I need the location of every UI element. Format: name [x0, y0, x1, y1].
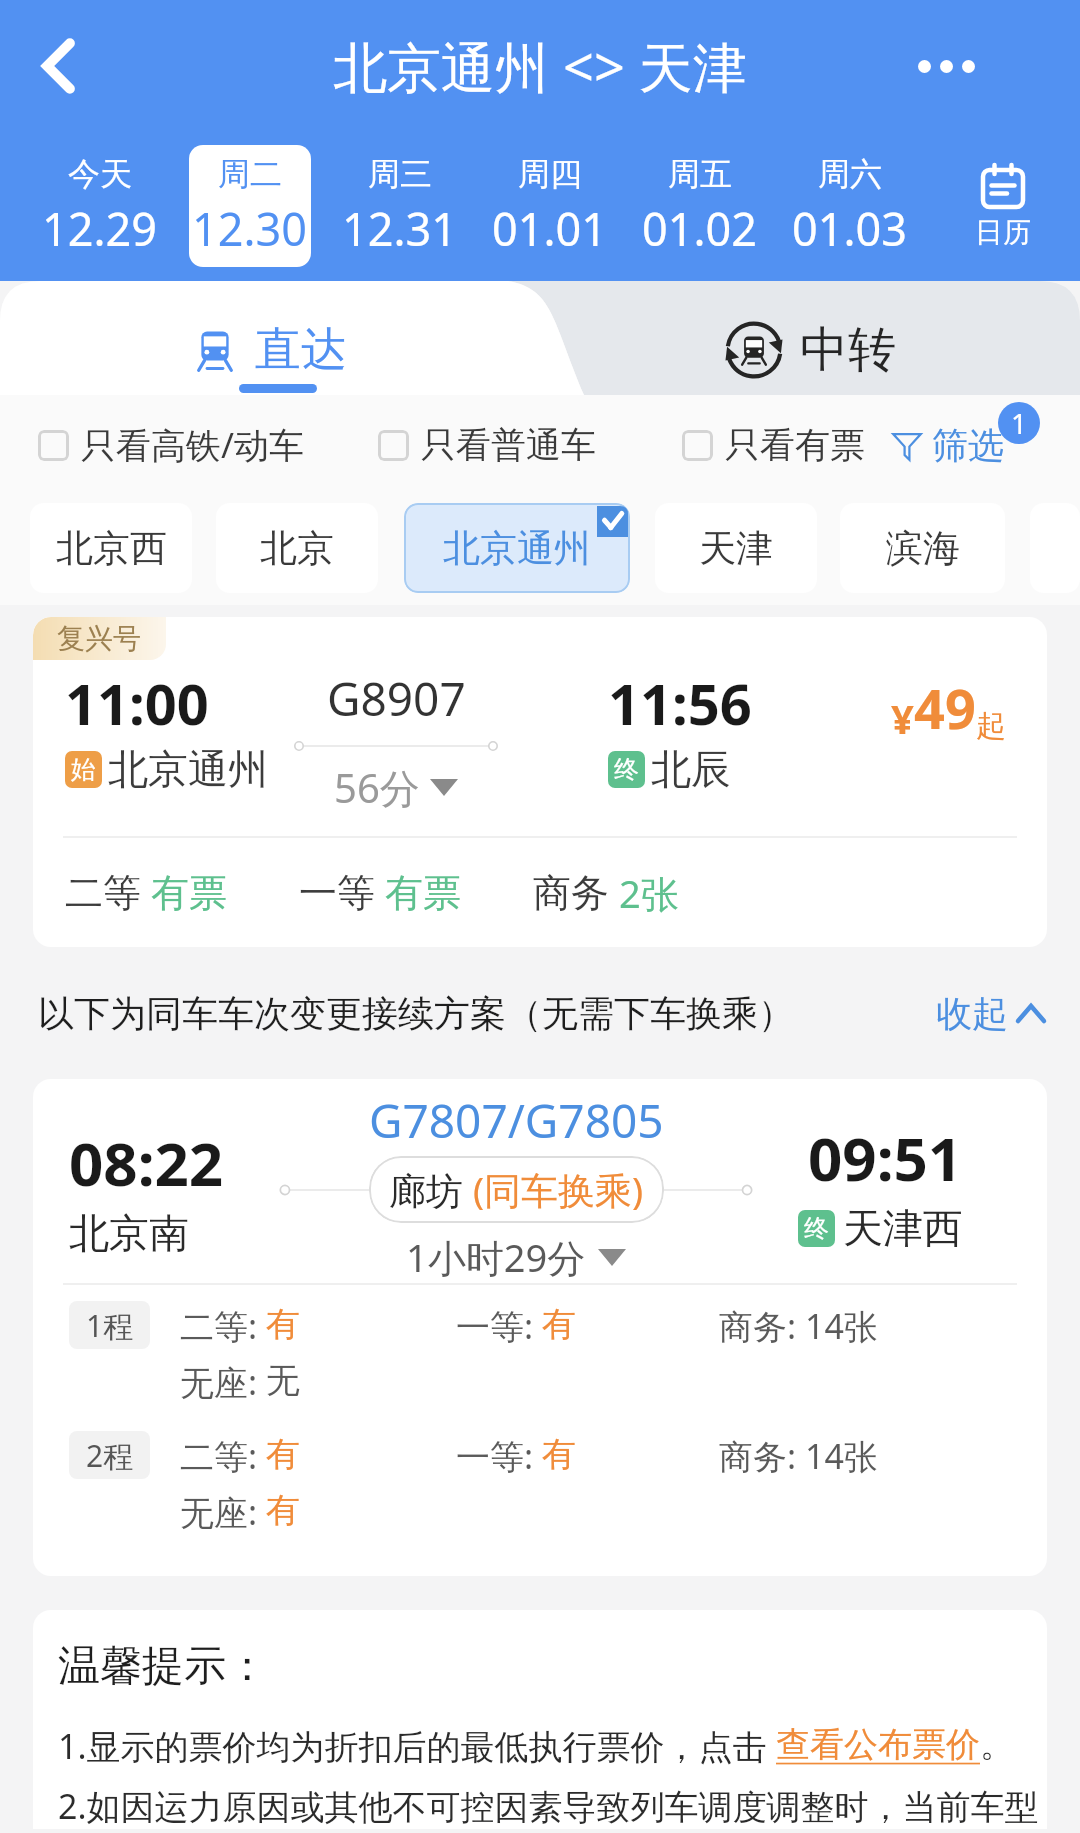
button[interactable]: 北京 [216, 503, 378, 593]
staticText: 12.29 [42, 198, 158, 259]
staticText: 01.02 [642, 198, 758, 259]
button[interactable]: 筛选 [892, 423, 1080, 468]
staticText: 56分 [334, 760, 420, 815]
staticText: 直达 [255, 321, 347, 379]
staticText: 天津西 [843, 1203, 963, 1253]
staticText: 商务: 14张 [719, 1433, 878, 1479]
staticText: 1.显示的票价均为折扣后的最低执行票价，点击 [58, 1723, 776, 1769]
staticText: 北京 [260, 525, 334, 572]
staticText: 商务: 14张 [719, 1303, 878, 1349]
button[interactable]: Calendar [925, 131, 1080, 281]
button[interactable]: 北京通州 [404, 503, 630, 593]
button[interactable]: More options [908, 28, 984, 104]
button[interactable]: 只看普通车 [378, 423, 596, 467]
button[interactable]: 滨海 [840, 503, 1005, 593]
staticText: 2.如因运力原因或其他不可控因素导致列车调度调整时，当前车型 [58, 1783, 1039, 1829]
staticText: 二等: [180, 1433, 266, 1479]
staticText: 温馨提示： [58, 1640, 268, 1693]
staticText: 二等 [65, 869, 141, 917]
staticText: 08:22 [69, 1122, 224, 1204]
staticText: 11:56 [608, 665, 752, 741]
staticText: 起 [976, 707, 1006, 745]
staticText: 09:51 [808, 1117, 963, 1199]
button[interactable]: 周三 [325, 131, 475, 281]
button[interactable]: 收起 [936, 991, 1044, 1036]
staticText: 一等: [456, 1303, 542, 1349]
staticText: 周四 [518, 154, 582, 194]
staticText: 01.01 [492, 198, 608, 259]
staticText: 廊坊 [389, 1164, 473, 1215]
staticText: 01.03 [792, 198, 908, 259]
staticText: 始 [71, 754, 96, 785]
staticText: 周三 [368, 154, 432, 194]
staticText: 只看有票 [725, 423, 865, 467]
staticText: 2张 [619, 867, 679, 919]
button[interactable]: 只看有票 [682, 423, 865, 467]
staticText: 中转 [800, 320, 896, 380]
staticText: 北京通州 [443, 525, 591, 572]
staticText: 有 [266, 1303, 300, 1346]
staticText: 有 [542, 1433, 576, 1476]
staticText: ¥ [891, 691, 914, 745]
staticText: 以下为同车车次变更接续方案（无需下车换乘） [38, 991, 794, 1036]
staticText: 复兴号 [57, 621, 141, 656]
staticText: 今天 [68, 154, 132, 194]
button[interactable]: 直达 [0, 281, 540, 395]
staticText: 。 [980, 1723, 1014, 1766]
staticText: 只看高铁/动车 [81, 421, 305, 469]
button[interactable]: 今天 [25, 131, 175, 281]
staticText: 周六 [818, 154, 882, 194]
staticText: 12.30 [192, 198, 308, 259]
staticText: 一等 [299, 869, 375, 917]
staticText: 天津 [699, 525, 773, 572]
staticText: 北京通州 <> 天津 [333, 29, 747, 103]
staticText: 周二 [218, 154, 282, 194]
staticText: 终 [614, 754, 639, 785]
staticText: 北京西 [56, 525, 167, 572]
staticText: 北辰 [651, 744, 731, 794]
button[interactable]: 周二 [175, 131, 325, 281]
staticText: 1小时29分 [406, 1231, 586, 1283]
staticText: 无 [266, 1359, 300, 1402]
button[interactable]: 天津 [655, 503, 817, 593]
button[interactable]: 复兴号 [33, 617, 1047, 947]
staticText: G8907 [327, 667, 466, 730]
staticText: 一等: [456, 1433, 542, 1479]
button[interactable]: 周六 [775, 131, 925, 281]
staticText: 有 [266, 1489, 300, 1532]
staticText: 日历 [975, 215, 1031, 250]
staticText: 收起 [936, 991, 1008, 1036]
staticText: 无座: [180, 1359, 266, 1405]
staticText: 有票 [151, 869, 227, 917]
staticText: 2程 [86, 1435, 134, 1476]
staticText: 12.31 [342, 198, 458, 259]
staticText: 滨海 [886, 525, 960, 572]
button[interactable]: 周五 [625, 131, 775, 281]
staticText: 有 [542, 1303, 576, 1346]
button[interactable]: 08:22 [33, 1079, 1047, 1576]
button[interactable]: 周四 [475, 131, 625, 281]
staticText: 查看公布票价 [776, 1723, 980, 1766]
staticText: 北京南 [69, 1208, 189, 1258]
staticText: 49 [914, 671, 976, 745]
staticText: (同车换乘) [473, 1164, 644, 1215]
staticText: 无座: [180, 1489, 266, 1535]
button[interactable]: 只看高铁/动车 [38, 421, 305, 469]
staticText: 终 [804, 1213, 829, 1244]
staticText: 11:00 [65, 665, 209, 741]
staticText: 筛选 [932, 423, 1004, 468]
staticText: 只看普通车 [421, 423, 596, 467]
staticText: 有 [266, 1433, 300, 1476]
staticText: G7807/G7805 [369, 1089, 664, 1152]
staticText: 商务 [533, 869, 609, 917]
staticText: 周五 [668, 154, 732, 194]
button[interactable]: Back [20, 28, 96, 104]
staticText: 有票 [385, 869, 461, 917]
staticText: 二等: [180, 1303, 266, 1349]
button[interactable]: 北京西 [30, 503, 192, 593]
button[interactable]: 中转 [540, 281, 1080, 395]
staticText: 北京通州 [108, 744, 268, 794]
staticText: 1 [1011, 404, 1028, 442]
staticText: 1程 [86, 1305, 134, 1346]
